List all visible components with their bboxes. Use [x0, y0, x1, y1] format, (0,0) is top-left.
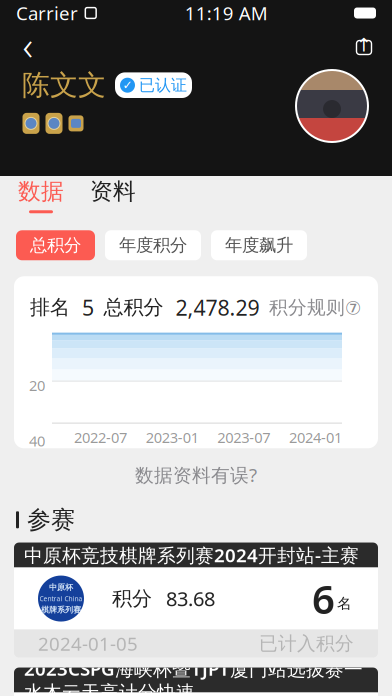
- staticText: 排名: [30, 295, 70, 320]
- staticText: 资料: [90, 177, 136, 205]
- staticText: 总积分: [30, 235, 81, 256]
- staticText: 2023-01: [146, 428, 199, 447]
- staticText: Carrier: [16, 1, 78, 25]
- staticText: 5: [70, 293, 94, 322]
- staticText: 年度积分: [119, 235, 187, 256]
- staticText: 40: [29, 431, 45, 451]
- staticText: 中原杯竞技棋牌系列赛2024开封站-主赛: [24, 543, 359, 567]
- staticText: 名: [337, 594, 352, 612]
- staticText: 中原杯: [49, 582, 73, 592]
- button[interactable]: 积分规则⑦: [269, 296, 362, 319]
- staticText: 2023CSPG海峡杯暨TJPT厦门站选拔赛一水木云天高计分快速: [24, 656, 363, 696]
- staticText: 棋牌系列赛: [41, 605, 81, 615]
- button[interactable]: 年度飙升: [211, 230, 307, 260]
- staticText: 数据: [18, 177, 64, 205]
- staticText: ‹: [22, 18, 33, 71]
- button[interactable]: 中原杯竞技棋牌系列赛2024开封站-主赛: [14, 543, 378, 658]
- staticText: 积分: [112, 586, 152, 611]
- staticText: 2023-07: [217, 428, 270, 447]
- staticText: 数据资料有误?: [135, 462, 257, 487]
- staticText: 2024-01-05: [38, 631, 138, 656]
- staticText: 陈文文: [22, 68, 106, 102]
- staticText: 已计入积分: [259, 632, 354, 655]
- staticText: 年度飙升: [225, 235, 293, 256]
- staticText: 2024-01: [289, 428, 342, 447]
- staticText: 83.68: [166, 585, 215, 612]
- button[interactable]: 数据: [18, 177, 64, 213]
- button[interactable]: 2023CSPG海峡杯暨TJPT厦门站选拔赛一水木云天高计分快速: [14, 668, 378, 696]
- staticText: 11:19 AM: [185, 1, 268, 25]
- button[interactable]: 年度积分: [105, 230, 201, 260]
- button[interactable]: 资料: [90, 177, 136, 213]
- staticText: Central China: [39, 594, 82, 603]
- staticText: 6: [312, 572, 335, 625]
- button[interactable]: Back: [6, 23, 50, 67]
- staticText: 参赛: [27, 505, 75, 535]
- staticText: 已认证: [139, 75, 187, 95]
- staticText: 20: [29, 376, 45, 395]
- staticText: ✓: [122, 78, 132, 92]
- staticText: 2022-07: [74, 428, 127, 447]
- button[interactable]: 数据资料有误?: [135, 462, 257, 487]
- staticText: ↑: [356, 34, 372, 56]
- staticText: 2,478.29: [163, 293, 259, 322]
- staticText: 积分规则⑦: [269, 296, 362, 319]
- button[interactable]: 总积分: [16, 230, 95, 260]
- staticText: 总积分: [103, 295, 163, 320]
- button[interactable]: Share: [342, 23, 386, 67]
